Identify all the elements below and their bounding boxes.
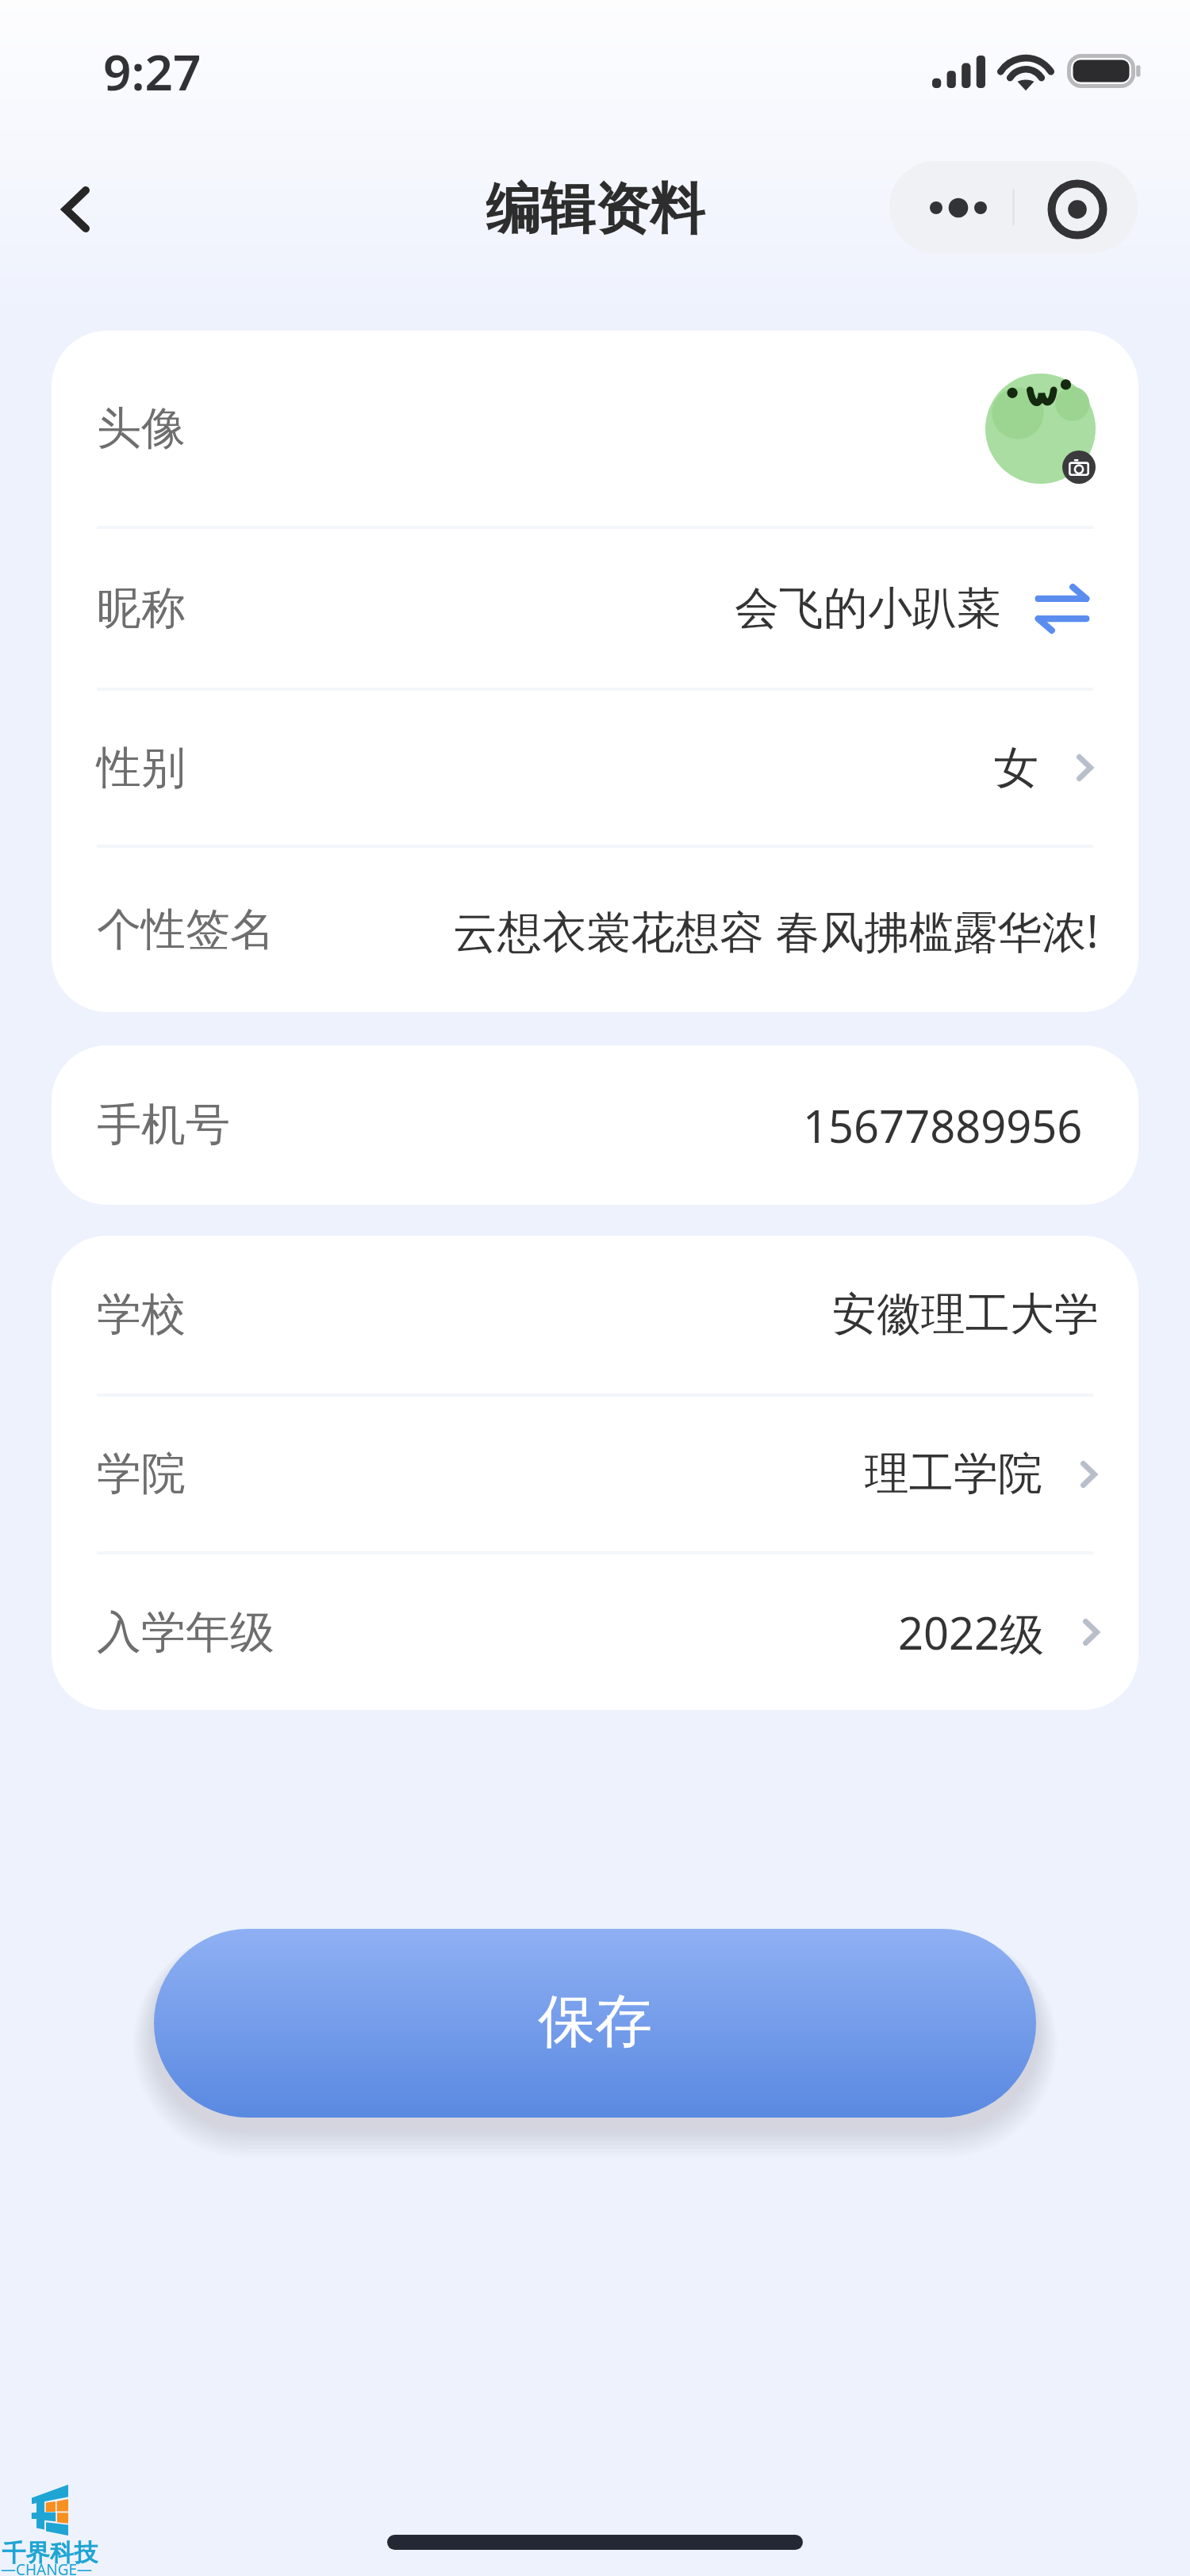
staticText: —CHANGE— [1,2559,93,2576]
staticText: 千界科技 [2,2538,98,2568]
button[interactable]: 个性签名 [52,848,1138,1012]
button[interactable]: 学校 [52,1236,1138,1393]
staticText: 手机号 [97,1097,230,1153]
staticText: 昵称 [97,581,186,637]
staticText: 15677889956 [803,1095,1083,1156]
button[interactable]: 手机号 [52,1045,1138,1205]
staticText: 保存 [538,1986,652,2058]
staticText: 会飞的小趴菜 [735,581,1001,637]
button[interactable]: 性别 [52,691,1138,845]
button[interactable]: More [889,161,1012,253]
staticText: 云想衣裳花想容 春风拂槛露华浓! [453,900,1099,960]
staticText: 性别 [97,740,186,796]
staticText: 2022级 [898,1602,1045,1662]
staticText: 头像 [97,401,186,457]
button[interactable]: Change avatar [1062,450,1096,484]
staticText: 个性签名 [97,902,274,958]
staticText: 学院 [97,1446,186,1502]
button[interactable]: 保存 [154,1929,1036,2118]
staticText: 学校 [97,1286,186,1343]
staticText: 理工学院 [865,1446,1042,1502]
staticText: 入学年级 [97,1604,274,1661]
button[interactable]: 头像 [52,331,1138,526]
staticText: 安徽理工大学 [832,1286,1099,1343]
staticText: 编辑资料 [486,175,704,244]
button[interactable]: Close mini program [1015,161,1138,253]
button[interactable]: 昵称 [52,529,1138,688]
staticText: 9:27 [103,38,202,105]
staticText: 女 [994,740,1038,796]
button[interactable]: 学院 [52,1397,1138,1551]
button[interactable]: Back [26,153,125,251]
button[interactable]: 入学年级 [52,1554,1138,1710]
